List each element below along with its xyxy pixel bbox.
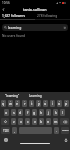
button[interactable]: "learning" xyxy=(0,92,24,99)
staticText: e xyxy=(16,101,19,106)
staticText: w xyxy=(9,101,12,106)
staticText: 9 xyxy=(59,100,61,103)
staticText: 4 xyxy=(24,100,26,103)
staticText: 278 following xyxy=(37,14,58,18)
button[interactable]: k xyxy=(53,109,58,116)
button[interactable]: Change language xyxy=(2,136,9,143)
button[interactable]: search xyxy=(61,127,69,134)
staticText: h xyxy=(40,110,43,115)
staticText: "learning" xyxy=(5,94,20,98)
staticText: n xyxy=(47,119,50,124)
button[interactable]: e xyxy=(15,100,20,107)
staticText: r xyxy=(24,101,26,106)
button[interactable]: , xyxy=(12,127,17,134)
button[interactable]: s xyxy=(11,109,16,116)
staticText: x xyxy=(20,119,22,124)
button[interactable]: n xyxy=(46,118,51,125)
staticText: m xyxy=(54,119,58,124)
staticText: t xyxy=(31,101,33,106)
button[interactable]: Learning xyxy=(24,92,47,99)
staticText: tania.sullivan xyxy=(23,7,47,12)
button[interactable]: 1,637 followers xyxy=(0,13,35,19)
button[interactable]: x xyxy=(18,118,23,125)
button[interactable]: h xyxy=(39,109,44,116)
button[interactable]: f xyxy=(25,109,30,116)
staticText: learning xyxy=(8,25,22,30)
staticText: Learning xyxy=(29,94,42,98)
button[interactable]: learning xyxy=(2,24,68,31)
staticText: y xyxy=(38,101,40,106)
staticText: ?123 xyxy=(3,129,9,133)
staticText: 0 xyxy=(66,100,68,103)
button[interactable]: v xyxy=(32,118,37,125)
staticText: 1 xyxy=(3,100,5,103)
staticText: b xyxy=(40,119,43,124)
button[interactable]: y xyxy=(36,100,41,107)
staticText: q xyxy=(2,101,5,106)
button[interactable]: o xyxy=(57,100,62,107)
staticText: f xyxy=(27,110,29,115)
button[interactable]: w xyxy=(8,100,13,107)
button[interactable]: z xyxy=(11,118,16,125)
staticText: s xyxy=(13,110,15,115)
button[interactable]: p xyxy=(64,100,69,107)
staticText: u xyxy=(44,101,47,106)
staticText: a xyxy=(5,110,8,115)
staticText: k xyxy=(55,110,57,115)
button[interactable]: r xyxy=(22,100,27,107)
staticText: g xyxy=(33,110,36,115)
button[interactable]: Back xyxy=(0,6,7,13)
button[interactable]: g xyxy=(32,109,37,116)
staticText: search xyxy=(62,129,69,132)
button[interactable]: q xyxy=(1,100,6,107)
staticText: c xyxy=(27,119,29,124)
staticText: d xyxy=(19,110,22,115)
button[interactable]: c xyxy=(25,118,30,125)
staticText: o xyxy=(58,101,61,106)
staticText: z xyxy=(13,119,15,124)
staticText: l xyxy=(62,110,63,115)
staticText: 5 xyxy=(31,100,33,103)
staticText: 3 xyxy=(17,100,19,103)
button[interactable]: a xyxy=(4,109,9,116)
button[interactable]: Voice input xyxy=(62,136,69,143)
button[interactable]: . xyxy=(54,127,59,134)
button[interactable]: j xyxy=(46,109,51,116)
button[interactable]: ?123 xyxy=(1,127,10,134)
button[interactable]: l xyxy=(60,109,65,116)
staticText: No users found xyxy=(2,34,26,38)
button[interactable]: Backspace xyxy=(60,118,69,125)
staticText: 7 xyxy=(45,100,47,103)
button[interactable]: Clear search xyxy=(63,26,66,29)
staticText: . xyxy=(56,129,57,133)
button[interactable]: t xyxy=(29,100,34,107)
button[interactable]: 278 following xyxy=(35,13,70,19)
staticText: j xyxy=(48,110,49,115)
other: Backspace xyxy=(60,118,69,125)
button[interactable]: d xyxy=(18,109,23,116)
staticText: 6 xyxy=(38,100,40,103)
button[interactable]: m xyxy=(53,118,58,125)
staticText: , xyxy=(14,129,15,133)
staticText: 8 xyxy=(52,100,54,103)
staticText: 2 xyxy=(10,100,12,103)
other: Shift xyxy=(1,118,9,125)
staticText: 10:56 xyxy=(2,1,10,5)
button[interactable]: b xyxy=(39,118,44,125)
button[interactable]: i xyxy=(50,100,55,107)
staticText: p xyxy=(65,101,68,106)
staticText: 1,637 followers xyxy=(2,14,25,18)
button[interactable]: Shift xyxy=(1,118,9,125)
button[interactable]: u xyxy=(43,100,48,107)
staticText: i xyxy=(52,101,53,106)
staticText: v xyxy=(34,119,36,124)
